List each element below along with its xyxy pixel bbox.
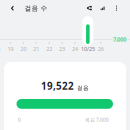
staticText: 19,522 [41, 79, 74, 93]
staticText: 19 [7, 45, 13, 53]
staticText: 20 [20, 45, 26, 53]
staticText: 22 [46, 45, 52, 53]
button[interactable]: Share [83, 0, 97, 16]
staticText: 23 [59, 45, 65, 53]
staticText: 26 [98, 45, 104, 53]
staticText: 걸음 [77, 84, 89, 91]
staticText: 걸음 수 [24, 4, 47, 12]
button[interactable]: Back [6, 0, 18, 16]
staticText: 0 [18, 117, 21, 123]
staticText: 18 [0, 45, 1, 53]
button[interactable]: More options [109, 0, 123, 16]
staticText: 24 [72, 45, 78, 53]
staticText: 21 [33, 45, 39, 53]
staticText: 10/25 [81, 45, 95, 53]
staticText: 목표 7,000 [85, 117, 109, 123]
staticText: 7,000 [113, 36, 126, 43]
button[interactable]: Trends [96, 0, 110, 16]
button[interactable]: 걸음 수 [21, 0, 51, 16]
